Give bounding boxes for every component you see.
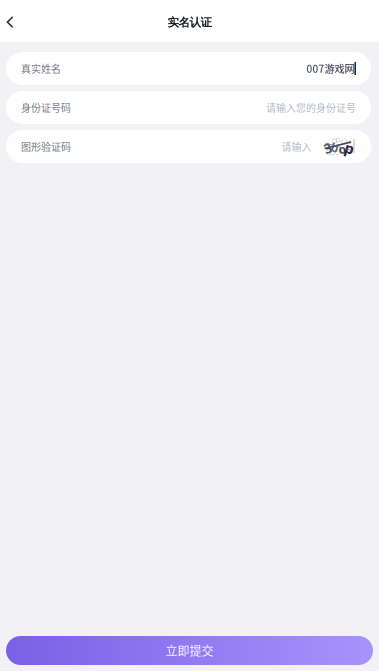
staticText: b [331,139,339,156]
staticText: p [345,138,354,158]
button[interactable]: 立即提交 [6,636,373,665]
staticText: 真实姓名 [21,61,61,76]
staticText: 实名认证 [167,15,211,30]
button[interactable]: 图形验证码 [6,130,371,163]
staticText: 请输入 [281,139,311,154]
staticText: 3 [324,139,332,157]
button[interactable]: 身份证号码 [6,91,371,124]
button[interactable]: 真实姓名 [6,52,371,85]
button[interactable]: Back [0,0,26,42]
staticText: 007游戏网 [306,61,354,76]
staticText: 图形验证码 [21,139,71,154]
staticText: o [338,141,346,157]
button[interactable]: Refresh captcha image [324,138,356,155]
staticText: 身份证号码 [21,100,71,115]
staticText: 请输入您的身份证号 [266,100,356,115]
staticText: 立即提交 [165,642,213,659]
